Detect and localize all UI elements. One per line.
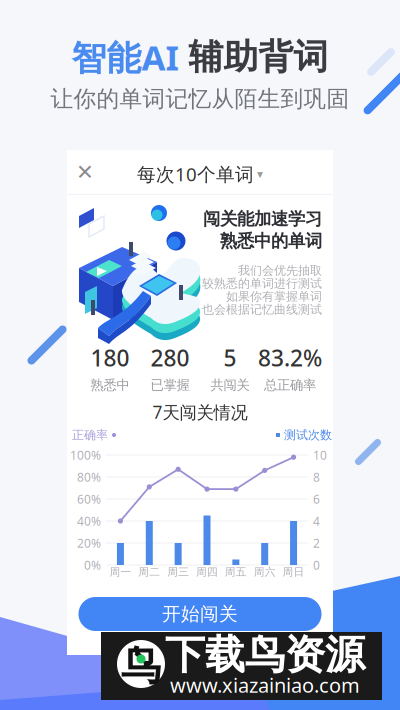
staticText: 已掌握 xyxy=(150,377,189,393)
staticText: 闯关能加速学习 xyxy=(203,208,322,230)
staticText: 智能AI xyxy=(71,34,178,80)
staticText: 让你的单词记忆从陌生到巩固 xyxy=(50,85,349,113)
staticText: 0 xyxy=(313,557,320,573)
staticText: 下载鸟资源 xyxy=(165,630,365,679)
staticText: 我们会优先抽取 xyxy=(238,263,322,278)
staticText: 8 xyxy=(313,469,320,485)
staticText: 7天闯关情况 xyxy=(152,400,247,423)
staticText: ▾ xyxy=(257,167,263,181)
staticText: www.xiazainiao.com xyxy=(170,672,360,698)
staticText: 80% xyxy=(77,469,101,485)
staticText: 10 xyxy=(313,447,327,463)
staticText: 开始闯关 xyxy=(162,602,238,625)
staticText: 6 xyxy=(313,491,320,507)
button[interactable]: 开始闯关 xyxy=(78,597,321,631)
staticText: 2 xyxy=(313,535,320,551)
staticText: 83.2% xyxy=(258,343,322,373)
staticText: 周五 xyxy=(225,565,247,578)
staticText: 100% xyxy=(70,447,101,463)
staticText: 5 xyxy=(223,343,236,373)
staticText: 较熟悉的单词进行测试 xyxy=(202,276,322,291)
staticText: 测试次数 xyxy=(284,428,332,442)
staticText: 20% xyxy=(77,535,101,551)
staticText: 4 xyxy=(313,513,320,529)
staticText: 40% xyxy=(77,513,101,529)
staticText: 280 xyxy=(150,343,189,373)
staticText: 180 xyxy=(90,343,129,373)
staticText: 正确率 xyxy=(72,428,108,442)
staticText: ✕ xyxy=(76,160,94,184)
staticText: 周六 xyxy=(254,565,276,578)
button[interactable]: 关闭 xyxy=(70,157,100,187)
staticText: 周三 xyxy=(167,565,189,578)
staticText: 60% xyxy=(77,491,101,507)
staticText: 如果你有掌握单词 xyxy=(226,289,322,304)
staticText: 共闯关 xyxy=(210,377,249,393)
button[interactable]: 每次10个单词 xyxy=(131,157,269,191)
staticText: 0% xyxy=(84,557,101,573)
staticText: 也会根据记忆曲线测试 xyxy=(202,302,322,317)
staticText: 熟悉中的单词 xyxy=(220,230,322,252)
staticText: 鸟 xyxy=(121,641,161,690)
staticText: 熟悉中 xyxy=(90,377,129,393)
staticText: 周一 xyxy=(109,565,131,578)
staticText: 每次10个单词 xyxy=(137,162,254,186)
staticText: 周日 xyxy=(283,565,305,578)
staticText: 总正确率 xyxy=(264,377,316,393)
staticText: 辅助背词 xyxy=(178,36,328,78)
staticText: 周四 xyxy=(196,565,218,578)
staticText: 周二 xyxy=(138,565,160,578)
